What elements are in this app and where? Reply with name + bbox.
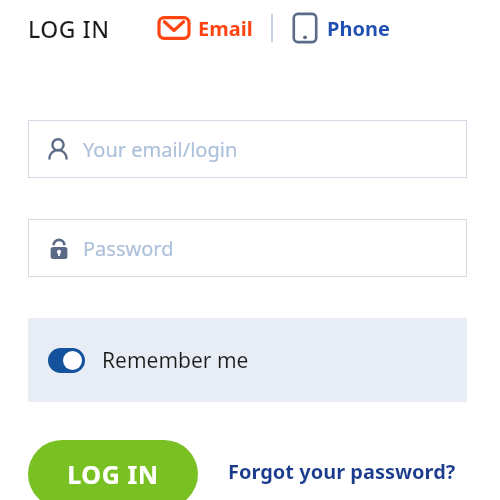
button[interactable]: Email — [156, 10, 255, 46]
staticText: LOG IN — [67, 457, 159, 491]
staticText: Forgot your password? — [228, 458, 456, 485]
button[interactable]: Password — [28, 219, 467, 277]
button[interactable]: LOG IN — [28, 440, 198, 500]
staticText: Remember me — [102, 346, 249, 375]
button[interactable]: Forgot your password? — [222, 452, 462, 491]
staticText: Email — [198, 15, 253, 42]
staticText: LOG IN — [28, 13, 110, 44]
button[interactable]: Your email/login — [28, 120, 467, 178]
button[interactable]: Phone — [289, 8, 392, 48]
staticText: Phone — [327, 15, 390, 42]
button[interactable]: Remember me — [28, 318, 467, 402]
staticText: Your email/login — [83, 136, 238, 163]
staticText: Password — [83, 235, 174, 262]
